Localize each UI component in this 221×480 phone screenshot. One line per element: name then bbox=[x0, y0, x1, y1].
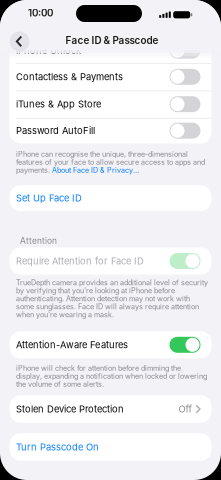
button[interactable]: Require Attention for Face ID bbox=[16, 247, 200, 275]
button[interactable]: iTunes & App Store bbox=[16, 90, 200, 118]
staticText: Attention-Aware Features bbox=[16, 339, 128, 350]
staticText: Require Attention for Face ID bbox=[16, 255, 144, 266]
staticText: Turn Passcode On bbox=[16, 441, 99, 452]
button[interactable]: Set Up Face ID bbox=[9, 185, 211, 211]
staticText: Contactless & Payments bbox=[16, 71, 123, 82]
staticText: iPhone can recognise the unique, three-d… bbox=[16, 150, 205, 166]
staticText: About Face ID & Privacy… bbox=[52, 166, 139, 174]
staticText: Set Up Face ID bbox=[16, 193, 82, 204]
button[interactable]: Contactless & Payments bbox=[16, 63, 200, 90]
button[interactable]: Password AutoFill bbox=[16, 118, 200, 143]
staticText: iPhone Unlock bbox=[16, 45, 81, 56]
button[interactable]: Turn Passcode On bbox=[9, 433, 211, 461]
staticText: Password AutoFill bbox=[16, 125, 95, 136]
staticText: Off bbox=[178, 403, 191, 414]
staticText: Attention bbox=[20, 236, 57, 246]
button[interactable]: Stolen Device Protection bbox=[9, 395, 211, 423]
button[interactable]: Back bbox=[10, 31, 30, 51]
staticText: Stolen Device Protection bbox=[16, 403, 124, 414]
button[interactable]: iPhone Unlock bbox=[16, 37, 200, 64]
staticText: 10:00 bbox=[28, 7, 53, 19]
staticText: payments. bbox=[16, 166, 52, 174]
staticText: iTunes & App Store bbox=[16, 99, 101, 110]
button[interactable]: Attention-Aware Features bbox=[16, 331, 200, 358]
staticText: iPhone will check for attention before d… bbox=[16, 364, 207, 388]
staticText: TrueDepth camera provides an additional … bbox=[16, 278, 208, 319]
staticText: Face ID & Passcode bbox=[65, 35, 158, 46]
button[interactable]: About Face ID & Privacy… bbox=[52, 166, 139, 174]
